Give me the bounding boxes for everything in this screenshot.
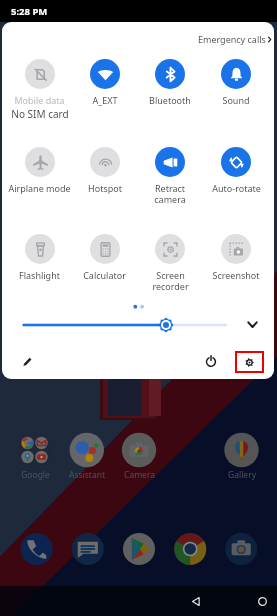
- staticText: A_EXT: [92, 94, 118, 106]
- button[interactable]: Home: [124, 586, 277, 616]
- staticText: Assistant: [69, 469, 105, 481]
- button[interactable]: Settings: [237, 353, 262, 371]
- button[interactable]: Power: [200, 350, 222, 372]
- button[interactable]: Screen recorder: [137, 234, 203, 292]
- button[interactable]: Screenshot: [203, 234, 269, 281]
- staticText: Bluetooth: [149, 94, 191, 106]
- button[interactable]: Auto-rotate: [203, 147, 269, 194]
- staticText: Gallery: [228, 469, 256, 481]
- button[interactable]: Flashlight: [7, 234, 72, 281]
- staticText: Camera: [124, 469, 155, 481]
- staticText: Screen recorder: [152, 269, 189, 292]
- button[interactable]: Recents: [190, 586, 277, 616]
- button[interactable]: Retract camera: [137, 147, 203, 205]
- staticText: Flashlight: [19, 269, 60, 281]
- staticText: Calculator: [83, 269, 126, 281]
- button[interactable]: Edit: [16, 350, 38, 372]
- staticText: Screenshot: [212, 269, 260, 281]
- staticText: Hotspot: [88, 182, 122, 194]
- button[interactable]: Emergency calls: [198, 33, 273, 45]
- button[interactable]: Hotspot: [72, 147, 137, 194]
- staticText: Retract camera: [154, 182, 186, 205]
- staticText: Sound: [222, 94, 250, 106]
- button[interactable]: Back: [58, 586, 277, 616]
- staticText: Airplane mode: [8, 182, 71, 194]
- staticText: Mobile data: [14, 94, 65, 106]
- button[interactable]: Mobile data: [7, 59, 72, 119]
- button[interactable]: A_EXT: [72, 59, 137, 106]
- staticText: Emergency calls: [198, 33, 266, 45]
- button[interactable]: Sound: [203, 59, 269, 106]
- staticText: Auto-rotate: [212, 182, 261, 194]
- button[interactable]: Calculator: [72, 234, 137, 281]
- button[interactable]: Bluetooth: [137, 59, 203, 106]
- staticText: 5:28 PM: [11, 5, 48, 18]
- button[interactable]: Airplane mode: [7, 147, 72, 194]
- staticText: No SIM card: [11, 107, 69, 119]
- staticText: Google: [21, 469, 50, 481]
